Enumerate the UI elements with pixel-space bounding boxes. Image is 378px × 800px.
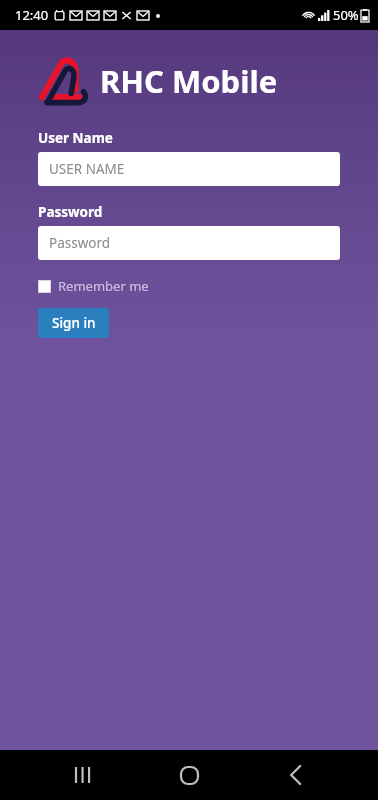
button[interactable]: Recents (59, 751, 107, 799)
button[interactable]: Password (38, 226, 340, 260)
staticText: User Name (38, 129, 113, 147)
staticText: 12:40 (15, 6, 49, 24)
staticText: Sign in (52, 314, 96, 332)
staticText: RHC Mobile (100, 60, 278, 102)
button[interactable]: Remember me (38, 277, 149, 295)
staticText: Password (38, 203, 103, 221)
staticText: USER NAME (49, 160, 125, 178)
staticText: Password (49, 234, 111, 252)
button[interactable]: USER NAME (38, 152, 340, 186)
staticText: Remember me (58, 277, 149, 295)
button[interactable]: Sign in (38, 308, 109, 338)
button[interactable]: Home (165, 751, 213, 799)
staticText: 50% (333, 6, 359, 24)
button[interactable]: Back (272, 751, 320, 799)
